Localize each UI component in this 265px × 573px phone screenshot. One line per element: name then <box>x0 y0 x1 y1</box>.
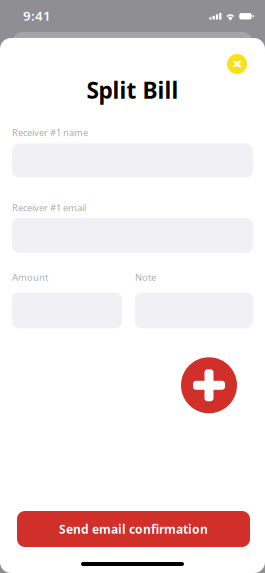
button[interactable]: Send email confirmation <box>17 511 250 547</box>
button[interactable]: Close <box>227 54 247 74</box>
staticText: Receiver #1 email <box>12 201 86 214</box>
staticText: Send email confirmation <box>59 521 208 537</box>
staticText: Receiver #1 name <box>12 126 88 138</box>
staticText: Amount <box>12 271 48 283</box>
staticText: 9:41 <box>23 7 51 24</box>
button[interactable]: Add receiver <box>181 357 237 413</box>
staticText: Note <box>135 271 156 283</box>
staticText: Split Bill <box>86 75 178 105</box>
